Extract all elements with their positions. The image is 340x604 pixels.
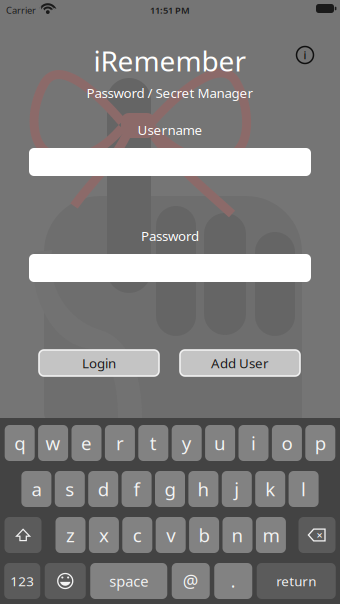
button[interactable]: c [122,517,152,553]
staticText: w [46,431,61,455]
button[interactable]: m [256,517,286,553]
staticText: d [98,477,109,501]
staticText: iRemember [93,42,246,79]
staticText: 11:51 PM [150,4,190,16]
button[interactable]: a [21,471,51,507]
staticText: Add User [211,354,269,372]
button[interactable]: u [205,425,235,461]
button[interactable]: return [257,563,336,599]
staticText: n [231,523,243,547]
staticText: k [265,477,275,501]
button[interactable]: f [122,471,152,507]
staticText: g [164,477,175,501]
staticText: z [66,523,75,547]
staticText: u [214,431,226,455]
staticText: q [14,431,25,455]
button[interactable]: 123 [4,563,40,599]
staticText: x [99,523,109,547]
button[interactable]: Login [39,350,159,376]
staticText: i [303,48,306,62]
button[interactable]: r [105,425,135,461]
button[interactable]: w [38,425,68,461]
button[interactable]: q [5,425,35,461]
button[interactable]: Add User [180,350,300,376]
staticText: j [234,477,239,501]
button[interactable]: i [238,425,268,461]
staticText: f [134,477,140,501]
button[interactable]: v [156,517,186,553]
button[interactable]: l [289,471,319,507]
staticText: c [133,523,142,547]
staticText: a [31,477,41,501]
staticText: r [116,431,124,455]
button[interactable]: x [89,517,119,553]
button[interactable]: Shift [4,517,41,553]
button[interactable]: s [55,471,85,507]
button[interactable]: @ [172,563,210,599]
staticText: 123 [10,572,34,590]
staticText: Password [141,227,199,245]
staticText: × [316,528,322,542]
button[interactable]: k [255,471,285,507]
button[interactable]: h [188,471,218,507]
staticText: b [199,523,210,547]
staticText: s [65,477,74,501]
staticText: v [166,523,175,547]
button[interactable]: Emoji [45,563,86,599]
staticText: Password / Secret Manager [86,84,253,102]
button[interactable]: Info [288,38,322,72]
button[interactable]: g [155,471,185,507]
staticText: m [262,523,279,547]
button[interactable]: e [71,425,101,461]
staticText: l [301,477,306,501]
button[interactable]: space [90,563,167,599]
staticText: Carrier [6,4,36,16]
staticText: . [231,569,236,592]
staticText: i [251,431,256,455]
staticText: h [197,477,209,501]
staticText: o [281,431,292,455]
staticText: t [150,431,157,455]
staticText: Login [82,354,116,372]
staticText: @ [183,569,199,592]
button[interactable]: j [222,471,252,507]
button[interactable]: n [222,517,252,553]
staticText: y [182,431,192,455]
button[interactable]: d [88,471,118,507]
staticText: p [315,431,326,455]
staticText: Username [137,121,202,139]
staticText: space [109,571,148,591]
staticText: return [276,572,316,590]
button[interactable]: . [214,563,252,599]
button[interactable]: z [55,517,85,553]
button[interactable]: Backspace [298,517,335,553]
staticText: e [81,431,92,455]
button[interactable]: b [189,517,219,553]
button[interactable]: p [305,425,335,461]
button[interactable]: o [272,425,302,461]
button[interactable]: y [172,425,202,461]
button[interactable]: t [138,425,168,461]
